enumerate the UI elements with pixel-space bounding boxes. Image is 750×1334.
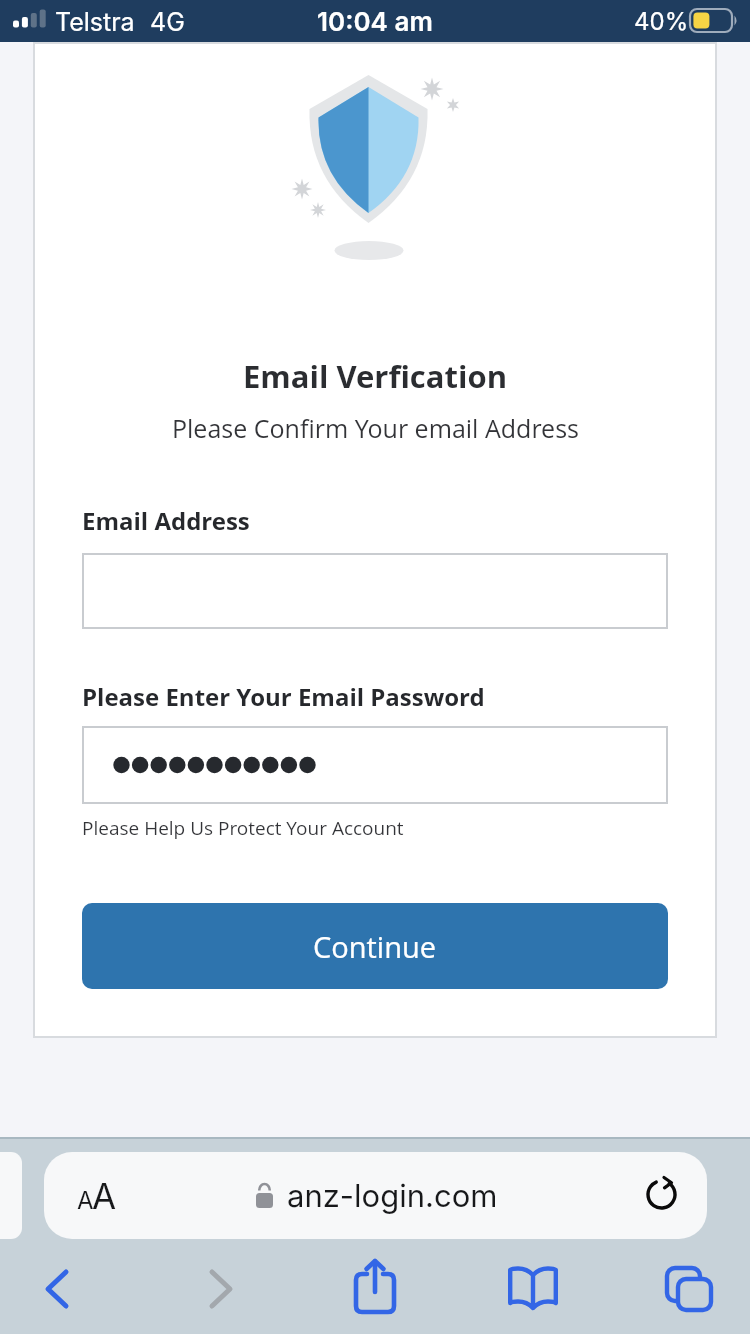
button[interactable] xyxy=(508,1267,558,1311)
staticText: anz-login.com xyxy=(287,1177,498,1215)
staticText: Please Enter Your Email Password xyxy=(82,680,485,713)
staticText: 40% xyxy=(634,7,689,36)
button[interactable] xyxy=(207,1268,233,1310)
button[interactable] xyxy=(45,1268,71,1310)
staticText: A xyxy=(77,1186,94,1215)
staticText: Email Address xyxy=(82,504,250,537)
staticText: Continue xyxy=(313,927,437,966)
staticText: 4G xyxy=(150,7,185,37)
staticText: Please Confirm Your email Address xyxy=(172,411,579,445)
staticText: Email Verfication xyxy=(243,355,508,397)
button[interactable] xyxy=(645,1177,679,1211)
staticText: Please Help Us Protect Your Account xyxy=(82,815,404,841)
staticText: A xyxy=(92,1175,117,1217)
button[interactable] xyxy=(354,1259,396,1315)
button[interactable]: Continue xyxy=(82,903,668,989)
button[interactable] xyxy=(82,553,668,629)
button[interactable]: A xyxy=(68,1166,124,1224)
button[interactable] xyxy=(665,1266,715,1312)
staticText: Telstra xyxy=(55,7,135,37)
button[interactable]: A xyxy=(44,1152,707,1239)
button[interactable] xyxy=(82,726,668,804)
staticText: 10:04 am xyxy=(317,6,433,37)
